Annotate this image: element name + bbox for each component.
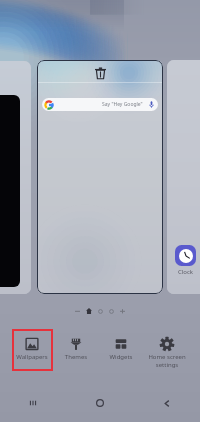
button[interactable]: Recent apps <box>0 384 66 422</box>
staticText: Widgets <box>98 353 144 361</box>
staticText: Say "Hey Google" <box>102 101 143 108</box>
button[interactable]: Home screen settings <box>144 329 190 371</box>
button[interactable] <box>175 245 196 266</box>
staticText: Wallpapers <box>9 353 55 361</box>
button[interactable]: Wallpapers <box>9 329 55 371</box>
staticText: Themes <box>53 353 99 361</box>
button[interactable]: Remove page <box>37 60 163 294</box>
button[interactable]: Home <box>66 384 133 422</box>
button[interactable]: Remove page <box>91 64 109 82</box>
button[interactable] <box>0 61 31 294</box>
button[interactable]: Back <box>133 384 200 422</box>
button[interactable]: Themes <box>53 329 99 371</box>
button[interactable]: Clock <box>167 60 200 294</box>
button[interactable]: Say "Hey Google" <box>42 98 158 111</box>
button[interactable]: Widgets <box>98 329 144 371</box>
staticText: Clock <box>178 268 194 276</box>
staticText: Home screen settings <box>144 353 190 369</box>
